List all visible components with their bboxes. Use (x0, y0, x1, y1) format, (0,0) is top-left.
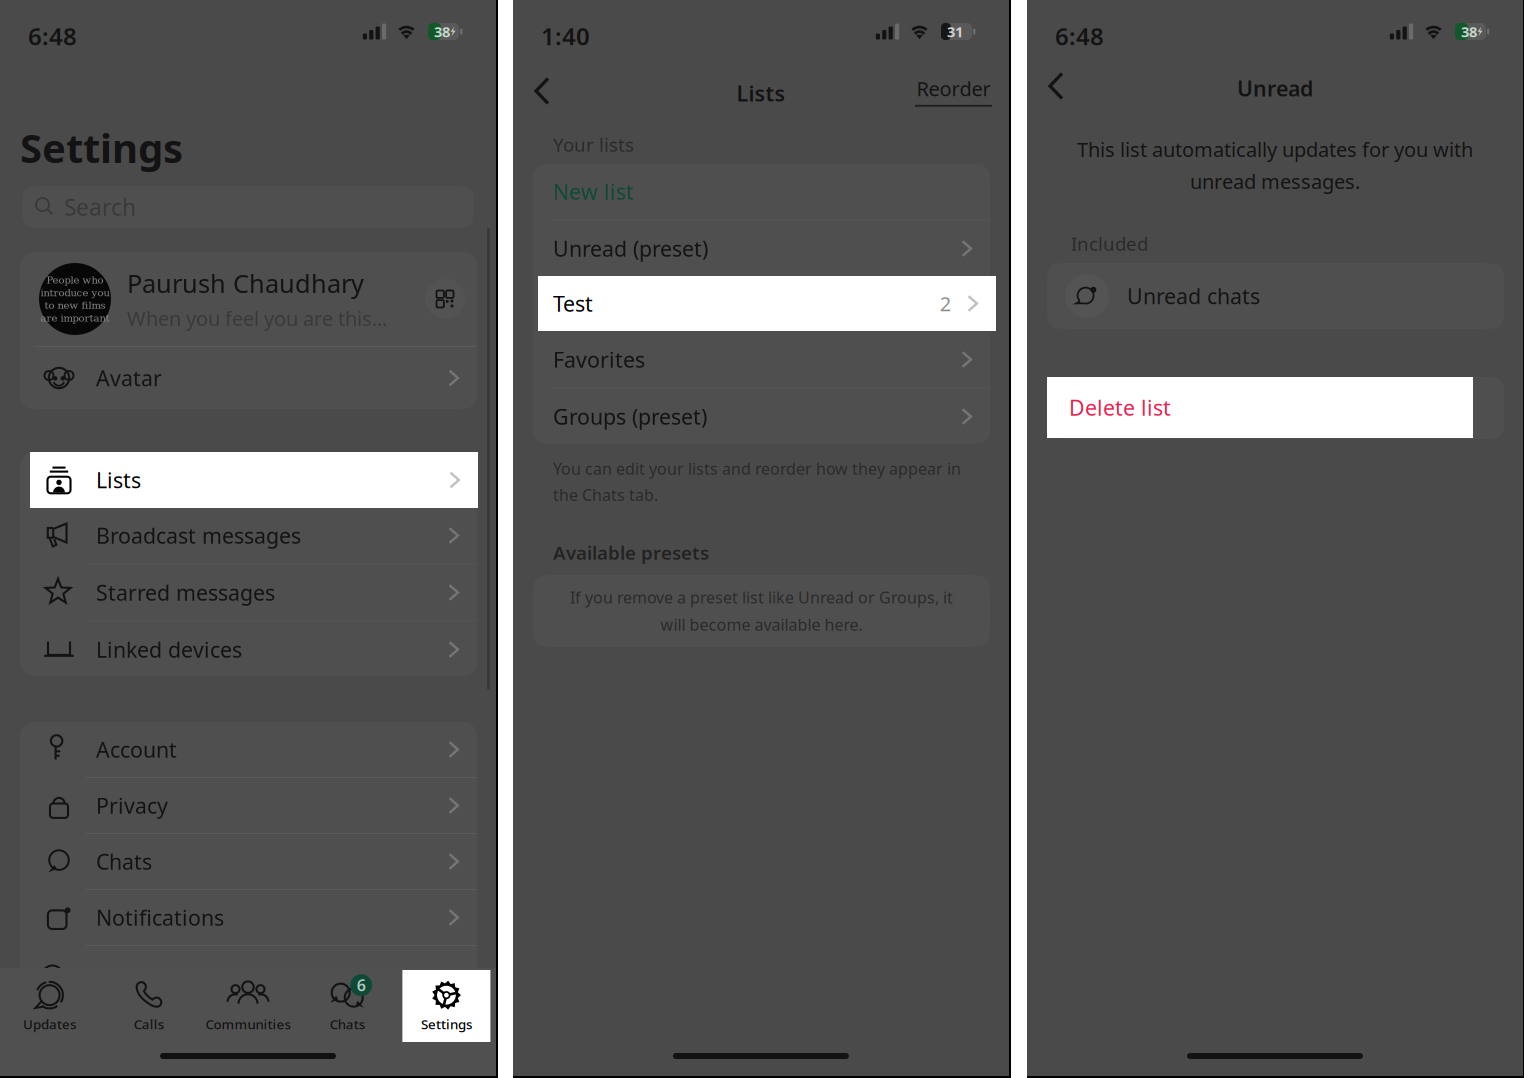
staticText: Delete list (1069, 393, 1171, 422)
button[interactable]: Broadcast messages (20, 507, 477, 563)
staticText: will become available here. (660, 614, 862, 635)
button[interactable]: Avatar (20, 347, 477, 409)
button[interactable]: New list (533, 163, 990, 219)
staticText: Your lists (553, 132, 634, 157)
staticText: Groups (preset) (553, 402, 707, 431)
button[interactable]: Lists (30, 452, 478, 508)
staticText: Paurush Chaudhary (127, 266, 364, 300)
staticText: You can edit your lists and reorder how … (553, 458, 961, 479)
staticText: Search (64, 192, 136, 222)
button[interactable]: Unread (preset) (533, 220, 990, 276)
button[interactable]: Updates (0, 970, 99, 1042)
button[interactable]: Account (20, 722, 477, 777)
staticText: the Chats tab. (553, 484, 658, 505)
button[interactable]: Linked devices (20, 621, 477, 677)
button[interactable]: Starred messages (20, 564, 477, 620)
staticText: Avatar (96, 364, 162, 392)
staticText: Notifications (96, 903, 224, 932)
staticText: 31 (947, 22, 963, 41)
staticText: introduce you (40, 287, 109, 298)
staticText: Broadcast messages (96, 521, 301, 550)
staticText: Favorites (553, 345, 645, 374)
button[interactable]: Groups (preset) (533, 388, 990, 444)
button[interactable]: Calls (99, 970, 198, 1042)
staticText: Starred messages (96, 578, 275, 607)
staticText: 38 (434, 22, 450, 41)
staticText: Chats (96, 847, 152, 876)
staticText: are important (40, 312, 109, 324)
staticText: Chats (330, 1015, 365, 1033)
staticText: This list automatically updates for you … (1077, 136, 1473, 163)
staticText: 6:48 (1055, 20, 1104, 52)
staticText: 6:48 (28, 20, 77, 52)
button[interactable]: Unread chats (1047, 263, 1504, 329)
staticText: 38 (1461, 22, 1477, 41)
staticText: 6 (357, 974, 366, 996)
button[interactable]: People who (20, 252, 477, 346)
button[interactable]: Settings (397, 970, 496, 1042)
button[interactable]: Back (1040, 71, 1072, 101)
staticText: When you feel you are this... (127, 305, 387, 332)
button[interactable]: Test (538, 276, 996, 331)
staticText: to new films (44, 299, 105, 311)
button[interactable]: Chats (20, 834, 477, 889)
button[interactable]: Back (526, 76, 558, 106)
staticText: Privacy (96, 791, 168, 820)
button[interactable]: Privacy (20, 778, 477, 833)
staticText: Calls (134, 1015, 164, 1033)
staticText: Lists (736, 79, 785, 107)
staticText: Settings (421, 1015, 472, 1033)
staticText: Unread (1237, 74, 1313, 102)
button[interactable]: Communities (198, 970, 298, 1042)
staticText: Lists (96, 466, 141, 494)
staticText: Linked devices (96, 635, 242, 664)
staticText: 1:40 (541, 20, 590, 52)
staticText: Unread (preset) (553, 234, 708, 263)
button[interactable]: Notifications (20, 890, 477, 945)
button[interactable]: Favorites (533, 331, 990, 387)
button[interactable]: 6 (298, 970, 397, 1042)
staticText: Communities (205, 1015, 290, 1033)
staticText: People who (46, 274, 103, 286)
staticText: If you remove a preset list like Unread … (570, 587, 953, 608)
staticText: Account (96, 735, 177, 764)
staticText: Available presets (553, 540, 709, 565)
staticText: New list (553, 177, 634, 206)
staticText: Updates (23, 1015, 76, 1033)
button[interactable]: Reorder (914, 77, 993, 105)
staticText: Settings (20, 121, 183, 174)
staticText: Unread chats (1127, 282, 1260, 310)
staticText: unread messages. (1190, 168, 1360, 195)
staticText: Reorder (916, 75, 990, 102)
staticText: Test (553, 289, 593, 318)
button[interactable]: Delete list (1047, 377, 1473, 438)
staticText: Included (1071, 231, 1148, 256)
staticText: 2 (940, 290, 951, 317)
